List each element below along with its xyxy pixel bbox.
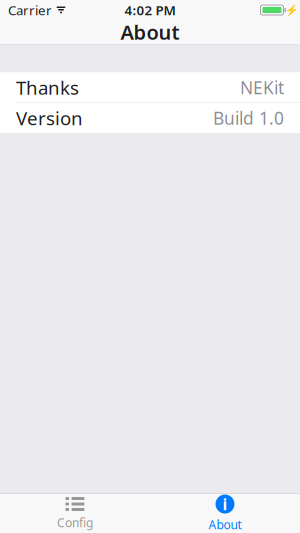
staticText: About <box>208 516 241 532</box>
staticText: Version <box>16 106 83 130</box>
button[interactable]: Config <box>0 494 150 533</box>
staticText: ⚡ <box>284 4 297 16</box>
staticText: About <box>120 19 179 45</box>
button[interactable]: i <box>150 494 300 533</box>
staticText: 4:02 PM <box>124 1 175 19</box>
staticText: NEKit <box>240 76 284 99</box>
staticText: Config <box>57 514 93 530</box>
button[interactable]: Version <box>0 103 300 133</box>
button[interactable]: Thanks <box>0 72 300 102</box>
staticText: Thanks <box>16 75 79 100</box>
staticText: Build 1.0 <box>213 106 284 129</box>
staticText: i <box>222 493 227 515</box>
staticText: Carrier <box>8 1 52 19</box>
